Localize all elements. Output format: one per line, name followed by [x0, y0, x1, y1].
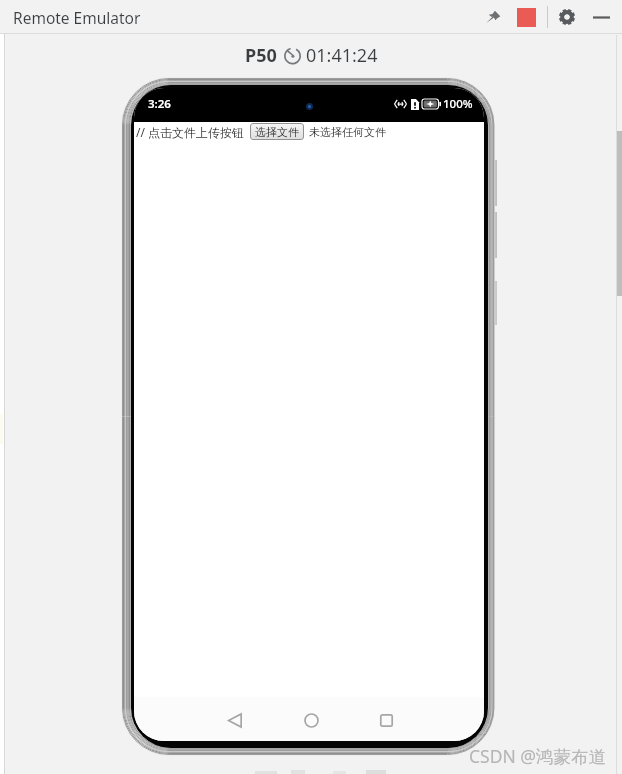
- button[interactable]: Pin window: [482, 4, 504, 30]
- button[interactable]: Minimize: [588, 4, 614, 30]
- button[interactable]: 选择文件: [250, 123, 304, 140]
- button[interactable]: Recent apps: [372, 706, 400, 734]
- staticText: 3:26: [148, 96, 171, 112]
- button[interactable]: Settings: [555, 4, 579, 30]
- staticText: 未选择任何文件: [309, 125, 386, 139]
- staticText: 选择文件: [255, 125, 299, 139]
- button[interactable]: Stop emulator: [512, 4, 540, 30]
- button[interactable]: Back: [221, 706, 249, 734]
- staticText: CSDN @鸿蒙布道: [469, 744, 607, 768]
- staticText: 100%: [443, 96, 473, 112]
- staticText: 01:41:24: [306, 43, 378, 68]
- staticText: P50: [245, 43, 277, 68]
- staticText: Remote Emulator: [13, 7, 141, 28]
- staticText: // 点击文件上传按钮: [136, 124, 245, 140]
- button[interactable]: Home: [297, 706, 325, 734]
